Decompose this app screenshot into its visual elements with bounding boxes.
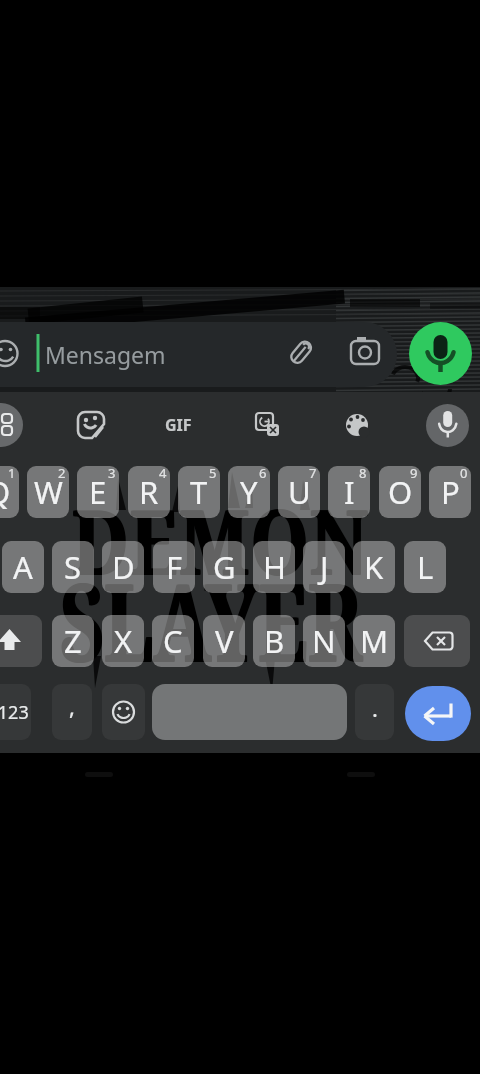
button[interactable]: W [27,466,69,518]
staticText: SLAYER [61,547,364,695]
staticText: O [388,471,413,513]
staticText: GIF [165,414,192,436]
button[interactable]: ?123 [0,684,31,740]
staticText: DEMON [73,480,371,601]
staticText: , [69,691,75,721]
staticText: SLAYER [60,547,363,695]
staticText: Q [0,471,11,513]
staticText: K [364,546,384,588]
button[interactable]: I [328,466,370,518]
staticText: B [264,620,285,662]
staticText: . [372,693,378,723]
staticText: Mensagem [45,339,166,370]
staticText: I [344,471,355,513]
button[interactable]: D [102,541,144,593]
staticText: 2 [58,466,66,482]
staticText: DEMON [71,480,369,601]
staticText: 6 [259,466,267,482]
staticText: SLAYER [59,547,362,695]
staticText: 8 [359,466,367,482]
staticText: DEMON [73,479,371,600]
button[interactable] [426,404,469,447]
button[interactable]: GIF [157,408,199,442]
button[interactable]: Y [228,466,270,518]
staticText: L [417,546,434,588]
staticText: 7 [309,466,317,482]
button[interactable]: O [379,466,421,518]
staticText: V [215,620,234,662]
staticText: G [213,546,236,588]
staticText: C [163,620,183,662]
staticText: 4 [159,466,167,482]
staticText: Z [64,620,82,662]
button[interactable]: , [52,684,92,740]
staticText: X [114,620,133,662]
button[interactable]: M [353,615,395,667]
button[interactable]: J [303,541,345,593]
staticText: DEMON [71,479,369,600]
button[interactable]: Z [52,615,94,667]
button[interactable]: Mensagem [0,322,397,387]
button[interactable]: F [153,541,195,593]
staticText: SLAYER [61,546,364,694]
staticText: 1 [8,466,16,482]
button[interactable]: C [152,615,194,667]
staticText: U [288,471,311,513]
button[interactable]: N [303,615,345,667]
button[interactable] [339,407,375,443]
staticText: SLAYER [59,546,362,694]
staticText: 9 [410,466,418,482]
button[interactable] [404,615,470,667]
button[interactable]: P [429,466,471,518]
staticText: Y [240,471,258,513]
staticText: 0 [460,466,468,482]
button[interactable]: B [253,615,295,667]
staticText: W [34,471,63,513]
staticText: DEMON [72,479,370,600]
staticText: P [441,471,460,513]
staticText: A [13,546,33,588]
button[interactable]: T [178,466,220,518]
staticText: S [64,546,82,588]
staticText: H [263,546,286,588]
button[interactable] [0,403,23,447]
button[interactable]: . [355,684,394,740]
button[interactable] [102,684,145,740]
button[interactable] [405,686,471,741]
button[interactable]: L [404,541,446,593]
staticText: T [190,471,208,513]
button[interactable] [152,684,347,740]
button[interactable]: R [128,466,170,518]
staticText: 5 [209,466,217,482]
staticText: E [89,471,107,513]
button[interactable]: E [77,466,119,518]
button[interactable]: U [278,466,320,518]
staticText: ?123 [0,700,29,725]
button[interactable] [72,407,108,443]
button[interactable]: A [2,541,44,593]
button[interactable]: V [203,615,245,667]
button[interactable]: G [203,541,245,593]
staticText: R [139,471,159,513]
staticText: 3 [108,466,116,482]
button[interactable] [249,407,285,443]
button[interactable] [0,615,42,667]
button[interactable]: H [253,541,295,593]
staticText: J [320,546,329,588]
staticText: DEMON [72,480,370,601]
button[interactable]: Q [0,466,19,518]
staticText: F [166,546,183,588]
button[interactable]: X [102,615,144,667]
button[interactable]: S [52,541,94,593]
staticText: SLAYER [60,546,363,694]
button[interactable] [409,322,472,385]
staticText: N [312,620,336,662]
button[interactable]: K [353,541,395,593]
staticText: M [360,620,389,662]
staticText: D [112,546,135,588]
